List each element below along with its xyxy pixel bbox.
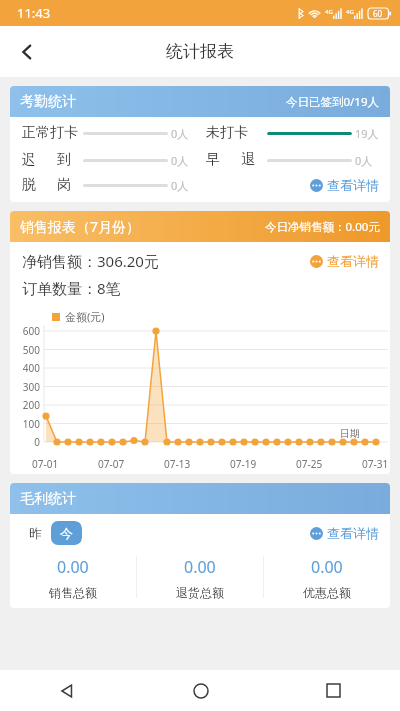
staticText: 600 [22,324,40,338]
staticText: 考勤统计 [20,93,76,111]
staticText: 毛利统计 [20,490,76,508]
staticText: 查看详情 [327,525,379,541]
staticText: 迟 [22,151,36,169]
staticText: 07-31 [362,457,389,471]
staticText: 日期 [340,427,360,440]
button[interactable]: Back [0,670,134,711]
staticText: 正常打卡 [22,124,78,142]
button[interactable]: 查看详情 [309,252,380,270]
button[interactable]: 查看详情 [309,524,380,542]
staticText: 今日已签到0/19人 [286,94,380,110]
staticText: 19人 [355,126,380,141]
staticText: 0人 [355,153,380,168]
button[interactable]: Home [134,670,267,711]
staticText: 岗 [57,176,71,194]
staticText: 11:43 [17,4,51,22]
staticText: 退货总额 [176,585,224,600]
staticText: 07-19 [230,457,257,471]
staticText: 07-13 [164,457,191,471]
staticText: 今日净销售额：0.00元 [265,219,380,235]
staticText: 统计报表 [166,41,234,62]
staticText: 脱 [22,176,36,194]
staticText: 销售总额 [49,585,97,600]
staticText: 0.00 [311,556,343,578]
staticText: 订单数量：8笔 [22,278,121,298]
staticText: 200 [22,398,40,412]
staticText: 未打卡 [206,124,248,142]
staticText: 300 [22,380,40,394]
staticText: 查看详情 [327,177,379,193]
button[interactable]: 0.00 [264,556,390,600]
button[interactable]: 查看详情 [309,176,380,194]
staticText: 100 [22,417,40,431]
staticText: 金额(元) [65,309,105,324]
staticText: 查看详情 [327,253,379,269]
staticText: 60 [373,8,383,19]
staticText: 0.00 [184,556,216,578]
button[interactable]: 今 [51,521,82,545]
button[interactable]: 0.00 [10,556,136,600]
staticText: 4G [346,8,354,16]
button[interactable]: Recent apps [267,670,400,711]
staticText: 到 [57,151,71,169]
staticText: 优惠总额 [303,585,351,600]
button[interactable]: 0.00 [137,556,263,600]
button[interactable]: 昨 [20,521,51,545]
staticText: 昨 [29,525,42,541]
staticText: 早 [206,151,220,169]
staticText: 07-07 [98,457,125,471]
button[interactable]: Back [5,30,49,74]
staticText: 0 [34,435,40,449]
staticText: 0人 [171,126,196,141]
staticText: 0人 [171,153,196,168]
staticText: 500 [22,343,40,357]
staticText: 销售报表（7月份） [20,217,141,236]
staticText: 400 [22,361,40,375]
staticText: 退 [241,151,255,169]
staticText: 净销售额：306.20元 [22,251,159,271]
staticText: 07-01 [32,457,59,471]
staticText: 今 [60,525,73,541]
staticText: 07-25 [296,457,323,471]
staticText: 4G [325,8,333,16]
staticText: 0.00 [57,556,89,578]
staticText: 0人 [171,178,196,193]
